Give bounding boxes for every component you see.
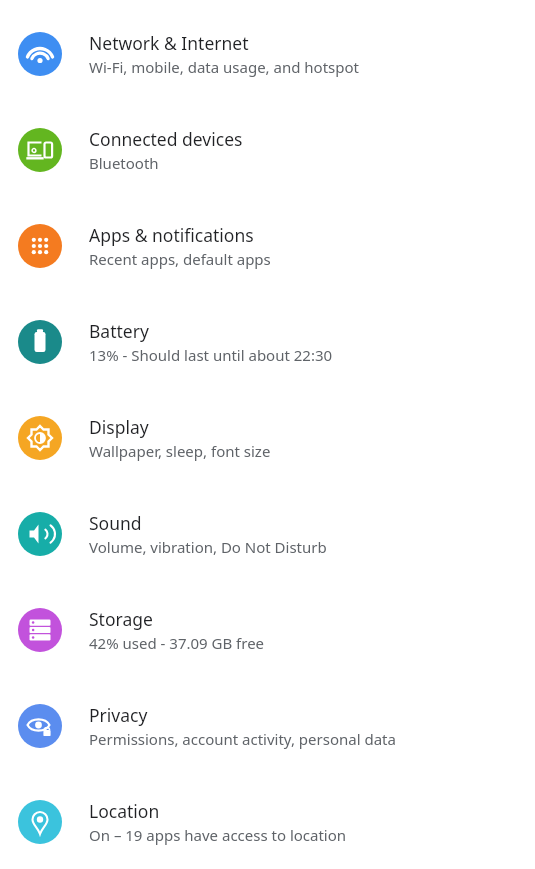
staticText: Storage [89, 607, 153, 631]
staticText: Permissions, account activity, personal … [89, 729, 396, 749]
other: Network & Internet [18, 32, 62, 76]
staticText: Battery [89, 319, 149, 343]
other: Connected devices [18, 128, 62, 172]
other: Battery [18, 320, 62, 364]
button[interactable]: Display [0, 390, 535, 486]
staticText: Display [89, 415, 149, 439]
button[interactable]: Network & Internet [0, 6, 535, 102]
other: Sound [18, 512, 62, 556]
button[interactable]: Connected devices [0, 102, 535, 198]
staticText: 13% - Should last until about 22:30 [89, 345, 333, 365]
other: Apps & notifications [18, 224, 62, 268]
staticText: Apps & notifications [89, 223, 254, 247]
other: Display [18, 416, 62, 460]
staticText: Wallpaper, sleep, font size [89, 441, 271, 461]
staticText: 42% used - 37.09 GB free [89, 633, 265, 653]
button[interactable]: Location [0, 774, 535, 869]
button[interactable]: Battery [0, 294, 535, 390]
other: Storage [18, 608, 62, 652]
button[interactable]: Storage [0, 582, 535, 678]
button[interactable]: Apps & notifications [0, 198, 535, 294]
staticText: Location [89, 799, 160, 823]
staticText: Volume, vibration, Do Not Disturb [89, 537, 327, 557]
staticText: Connected devices [89, 127, 243, 151]
button[interactable]: Privacy [0, 678, 535, 774]
staticText: Sound [89, 511, 142, 535]
staticText: Privacy [89, 703, 148, 727]
staticText: Bluetooth [89, 153, 159, 173]
other: Location [18, 800, 62, 844]
staticText: Recent apps, default apps [89, 249, 271, 269]
staticText: Wi-Fi, mobile, data usage, and hotspot [89, 57, 359, 77]
staticText: Network & Internet [89, 31, 249, 55]
staticText: On – 19 apps have access to location [89, 825, 347, 845]
other: Privacy [18, 704, 62, 748]
button[interactable]: Sound [0, 486, 535, 582]
